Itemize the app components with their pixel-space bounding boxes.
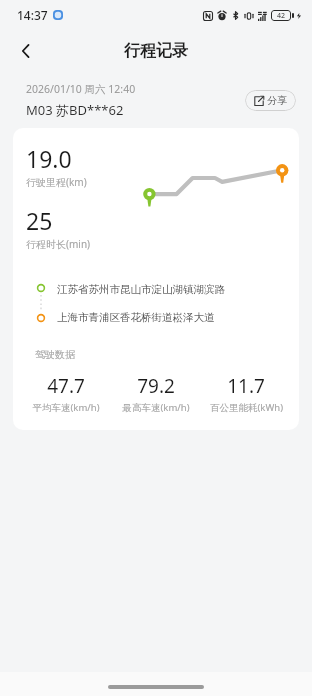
staticText: M03 苏BD***62 <box>26 101 124 119</box>
button[interactable]: Back <box>8 33 44 69</box>
staticText: 百公里能耗(kWh) <box>210 401 283 414</box>
button[interactable]: 分享 <box>245 90 296 111</box>
staticText: 行驶里程(km) <box>26 175 87 189</box>
staticText: 分享 <box>267 94 287 107</box>
staticText: 江苏省苏州市昆山市淀山湖镇湖滨路 <box>57 283 225 296</box>
staticText: 上海市青浦区香花桥街道崧泽大道 <box>57 311 215 324</box>
staticText: 47.7 <box>47 373 85 399</box>
staticText: 行程时长(min) <box>26 237 91 251</box>
staticText: 驾驶数据 <box>35 348 75 361</box>
staticText: 2026/01/10 周六 12:40 <box>26 82 136 96</box>
staticText: 平均车速(km/h) <box>32 401 100 414</box>
staticText: 最高车速(km/h) <box>122 401 190 414</box>
staticText: 19.0 <box>26 143 72 174</box>
staticText: 42 <box>277 11 286 21</box>
staticText: 25 <box>26 205 53 236</box>
staticText: 79.2 <box>137 373 175 399</box>
staticText: 行程记录 <box>124 41 188 61</box>
staticText: 11.7 <box>227 373 265 399</box>
staticText: 14:37 <box>17 7 48 23</box>
